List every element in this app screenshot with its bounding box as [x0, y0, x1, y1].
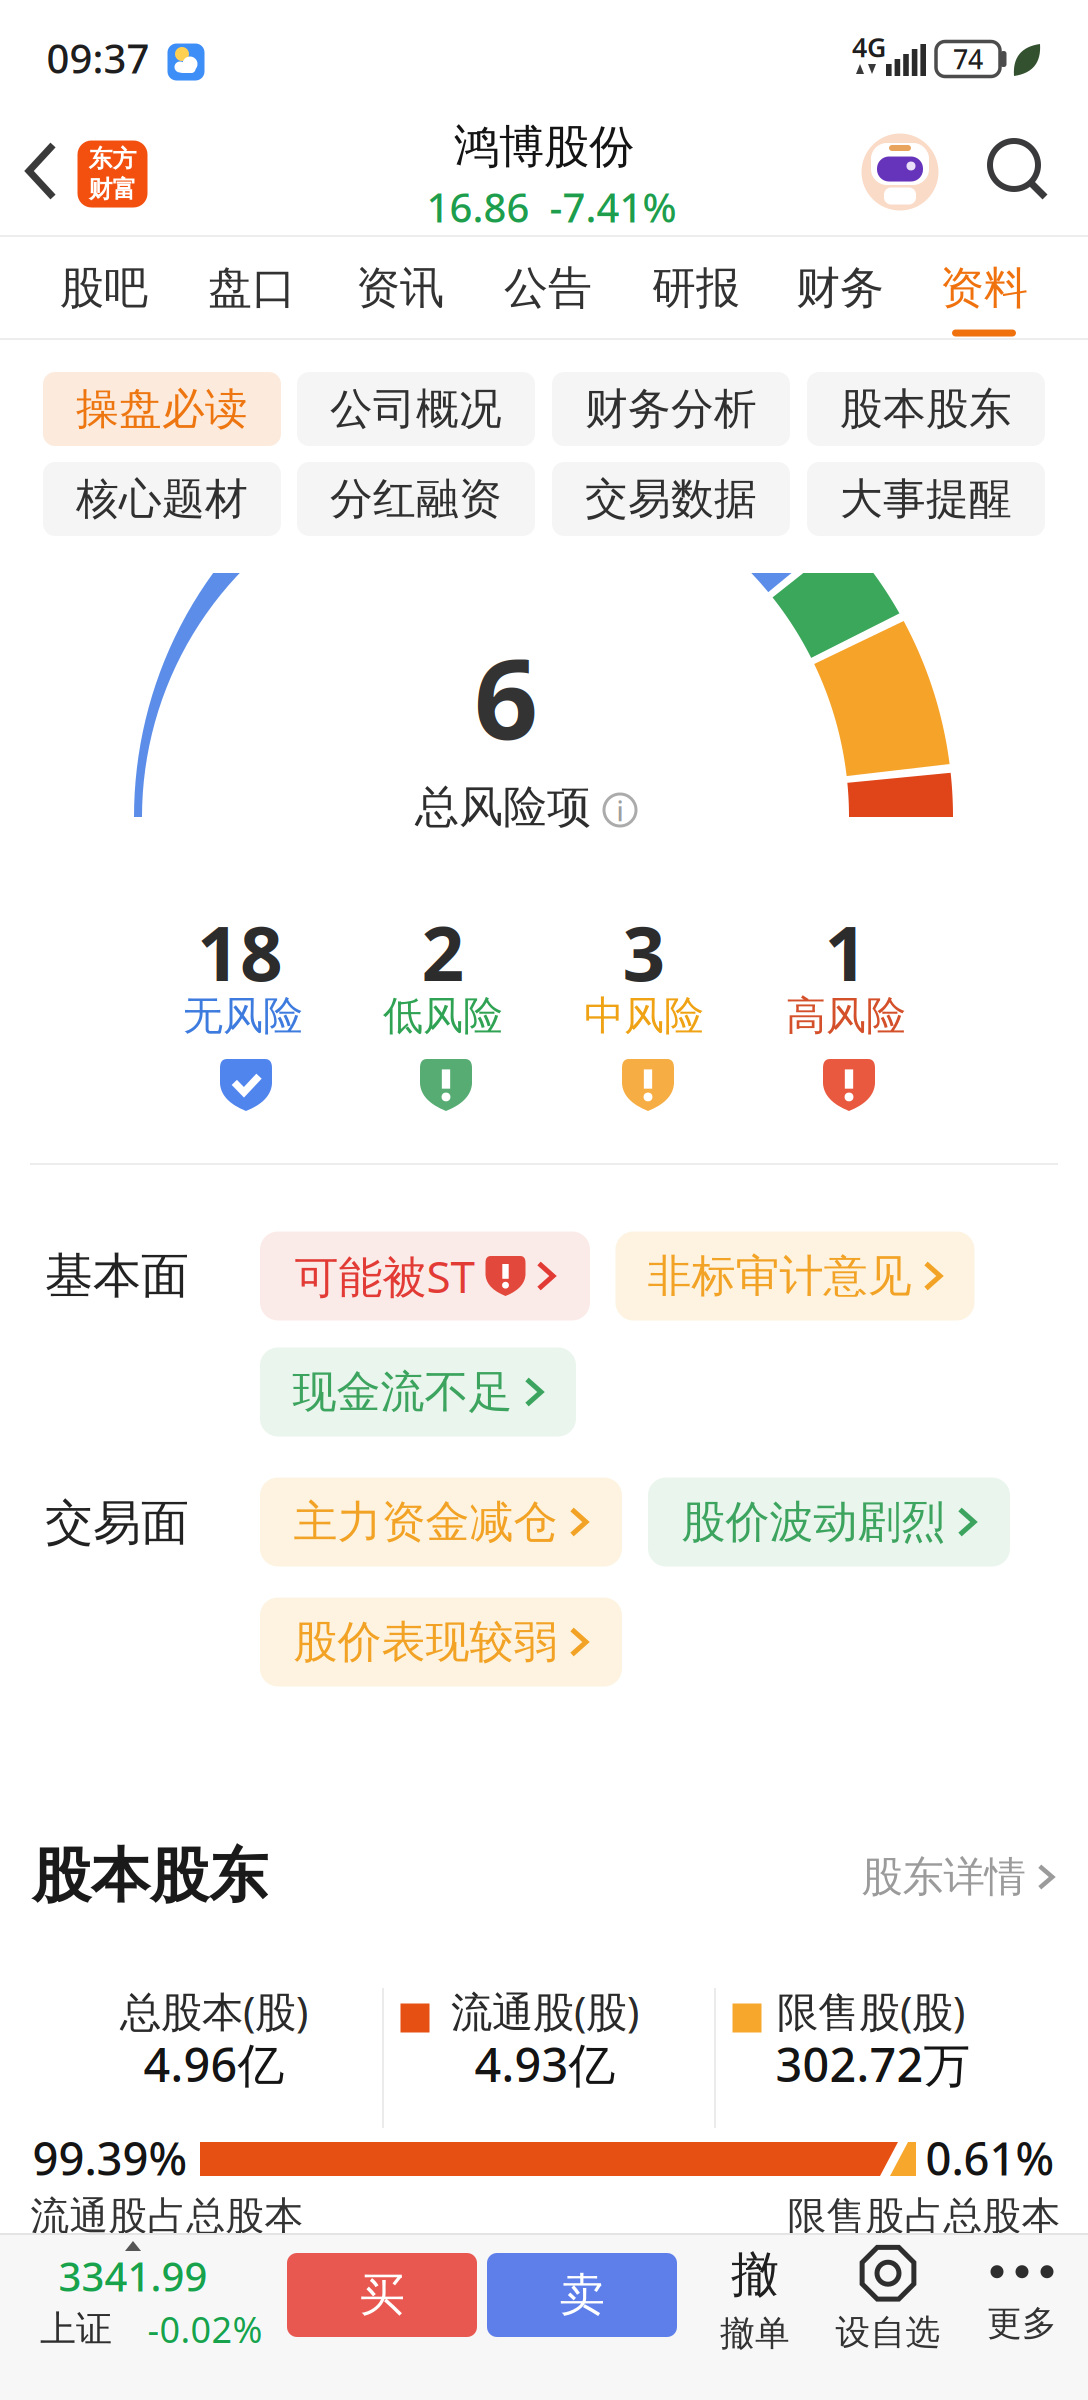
staticText: 1	[824, 902, 867, 1002]
staticText: 股吧	[60, 261, 148, 315]
button[interactable]: 卖	[487, 2253, 677, 2337]
staticText: 设自选	[835, 2311, 940, 2354]
button[interactable]: 公告	[504, 261, 592, 315]
staticText: 可能被ST	[294, 1247, 474, 1305]
staticText: 现金流不足	[292, 1365, 512, 1419]
staticText: 总风险项	[415, 780, 591, 834]
button[interactable]: 股吧	[60, 261, 148, 315]
staticText: 4.93亿	[474, 2033, 615, 2095]
staticText: 分红融资	[330, 473, 502, 525]
staticText: 74	[953, 41, 983, 77]
staticText: 东方	[88, 144, 136, 173]
staticText: 大事提醒	[840, 473, 1012, 525]
staticText: 中风险	[584, 991, 704, 1040]
staticText: 股本股东	[840, 383, 1012, 435]
staticText: 基本面	[45, 1246, 189, 1305]
button[interactable]: 设自选	[835, 2244, 940, 2354]
staticText: 撤	[731, 2245, 779, 2304]
button[interactable]: 股本股东	[807, 372, 1045, 446]
button[interactable]: 买	[287, 2253, 477, 2337]
staticText: 限售股(股)	[777, 1984, 965, 2038]
button[interactable]: 现金流不足	[260, 1347, 576, 1436]
staticText: 交易数据	[585, 473, 757, 525]
staticText: 股本股东	[32, 1840, 268, 1912]
button[interactable]: 操盘必读	[43, 372, 281, 446]
staticText: 撤单	[720, 2312, 790, 2355]
button[interactable]: 交易数据	[552, 462, 790, 536]
staticText: -0.02%	[147, 2305, 262, 2353]
staticText: 更多	[987, 2302, 1057, 2345]
staticText: 股东详情	[861, 1852, 1025, 1902]
button[interactable]: 主力资金减仓	[260, 1477, 622, 1566]
button[interactable]: 股价表现较弱	[260, 1597, 622, 1686]
button[interactable]: 财务分析	[552, 372, 790, 446]
staticText: 资料	[940, 261, 1028, 315]
button[interactable]: 股东详情	[861, 1852, 1054, 1902]
button[interactable]: 大事提醒	[807, 462, 1045, 536]
staticText: 高风险	[786, 991, 906, 1040]
button[interactable]: 盘口	[208, 261, 296, 315]
staticText: 流通股(股)	[451, 1984, 639, 2038]
staticText: 股价表现较弱	[293, 1615, 557, 1669]
button[interactable]: 非标审计意见	[615, 1231, 974, 1320]
button[interactable]: 东方	[77, 140, 147, 207]
staticText: 6	[474, 622, 538, 770]
button[interactable]: 研报	[652, 261, 740, 315]
staticText: 4G	[852, 29, 886, 65]
staticText: 资讯	[356, 261, 444, 315]
staticText: 09:37	[46, 31, 149, 84]
button[interactable]	[861, 133, 938, 210]
button[interactable]: 股价波动剧烈	[648, 1477, 1010, 1566]
staticText: 99.39%	[32, 2128, 187, 2188]
staticText: 无风险	[183, 991, 303, 1040]
button[interactable]: 公司概况	[297, 372, 535, 446]
staticText: 买	[359, 2267, 404, 2323]
button[interactable]: 核心题材	[43, 462, 281, 536]
staticText: 上证	[40, 2307, 112, 2351]
staticText: 财务	[796, 261, 884, 315]
button[interactable]	[987, 138, 1049, 200]
staticText: 流通股占总股本	[30, 2192, 303, 2240]
staticText: 财务分析	[585, 383, 757, 435]
button[interactable]: 资讯	[356, 261, 444, 315]
staticText: 低风险	[383, 991, 503, 1040]
staticText: 交易面	[45, 1493, 189, 1552]
button[interactable]: 3341.99	[7, 2236, 267, 2356]
staticText: 4.96亿	[143, 2033, 284, 2095]
staticText: 操盘必读	[76, 383, 248, 435]
staticText: 公告	[504, 261, 592, 315]
staticText: 主力资金减仓	[293, 1495, 557, 1549]
button[interactable]: 分红融资	[297, 462, 535, 536]
button[interactable]: 更多	[987, 2265, 1057, 2345]
staticText: 302.72万	[775, 2033, 970, 2095]
staticText: 0.61%	[925, 2128, 1054, 2188]
staticText: 核心题材	[76, 473, 248, 525]
staticText: 财富	[88, 174, 136, 204]
staticText: 股价波动剧烈	[681, 1495, 945, 1549]
staticText: 卖	[559, 2267, 604, 2323]
button[interactable]: 财务	[796, 261, 884, 315]
staticText: i	[616, 793, 623, 829]
staticText: -7.41%	[549, 180, 676, 233]
button[interactable]	[24, 141, 58, 201]
staticText: 限售股占总股本	[787, 2192, 1060, 2240]
staticText: 16.86	[426, 180, 529, 233]
staticText: 非标审计意见	[647, 1249, 911, 1303]
staticText: 鸿博股份	[454, 119, 634, 175]
staticText: 总股本(股)	[120, 1984, 308, 2038]
staticText: 盘口	[208, 261, 296, 315]
button[interactable]: 可能被ST	[260, 1231, 590, 1320]
staticText: 3	[622, 902, 665, 1002]
staticText: 研报	[652, 261, 740, 315]
staticText: 3341.99	[58, 2249, 207, 2302]
staticText: 公司概况	[330, 383, 502, 435]
button[interactable]: 撤	[720, 2245, 790, 2355]
staticText: 2	[421, 902, 464, 1002]
button[interactable]: 资料	[940, 261, 1028, 315]
staticText: 18	[197, 902, 283, 1002]
